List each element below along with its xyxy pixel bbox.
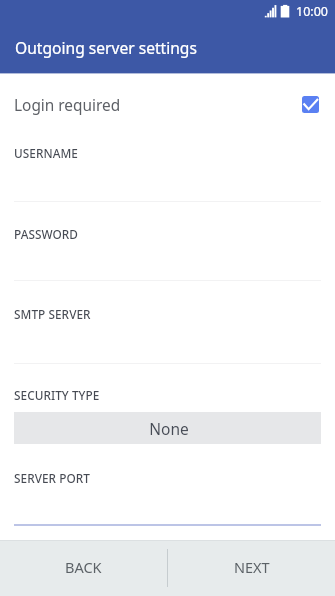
staticText: USERNAME	[14, 145, 78, 161]
button[interactable]: Login required, checked	[302, 96, 319, 113]
button[interactable]: None	[14, 412, 321, 444]
button[interactable]: NEXT	[168, 540, 335, 596]
button[interactable]: USERNAME	[14, 141, 321, 202]
button[interactable]: SERVER PORT	[14, 466, 321, 526]
staticText: SMTP SERVER	[14, 306, 91, 322]
button[interactable]: SMTP SERVER	[14, 302, 321, 364]
staticText: BACK	[65, 557, 102, 577]
staticText: 10:00	[296, 3, 328, 20]
button[interactable]: PASSWORD	[14, 222, 321, 281]
button[interactable]: Login required	[0, 85, 335, 125]
other: Battery full	[280, 4, 290, 18]
button[interactable]: BACK	[0, 540, 167, 596]
staticText: Login required	[14, 95, 121, 116]
staticText: None	[149, 418, 189, 439]
staticText: PASSWORD	[14, 226, 79, 242]
other: Mobile signal strength	[264, 4, 278, 18]
staticText: SECURITY TYPE	[14, 387, 100, 403]
staticText: SERVER PORT	[14, 470, 90, 486]
staticText: NEXT	[234, 557, 270, 577]
staticText: Outgoing server settings	[15, 37, 197, 58]
